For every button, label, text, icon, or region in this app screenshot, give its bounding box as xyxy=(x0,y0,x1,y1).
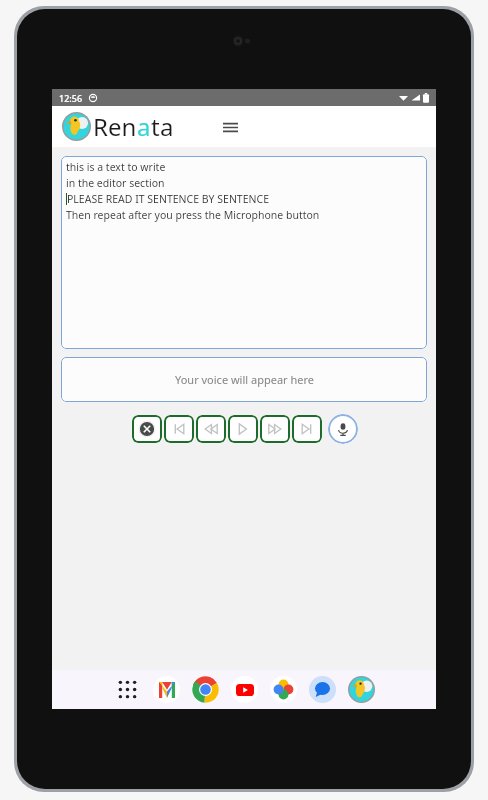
button[interactable]: Photos xyxy=(267,673,300,706)
button[interactable]: Rewind xyxy=(196,415,226,443)
button[interactable]: Voice output xyxy=(61,357,427,402)
staticText: Ren xyxy=(93,110,137,143)
button[interactable]: Text editor xyxy=(61,156,427,349)
button[interactable]: Previous sentence xyxy=(164,415,194,443)
staticText: this is a text to write xyxy=(66,160,166,174)
button[interactable]: Next sentence xyxy=(292,415,322,443)
staticText: PLEASE READ IT SENTENCE BY SENTENCE xyxy=(67,192,269,206)
button[interactable]: Play xyxy=(228,415,258,443)
staticText: t xyxy=(151,110,160,143)
staticText: a xyxy=(137,110,151,143)
staticText: 12:56 xyxy=(59,92,83,104)
button[interactable]: Fast forward xyxy=(260,415,290,443)
button[interactable]: Renata home xyxy=(60,108,176,145)
button[interactable]: Microphone xyxy=(328,414,358,444)
staticText: in the editor section xyxy=(66,176,165,190)
staticText: a xyxy=(160,110,174,143)
staticText: Then repeat after you press the Micropho… xyxy=(66,208,320,222)
button[interactable]: Gmail xyxy=(150,673,183,706)
button[interactable]: Stop xyxy=(132,415,162,443)
button[interactable]: Renata xyxy=(345,673,378,706)
button[interactable]: Messages xyxy=(306,673,339,706)
button[interactable]: All apps xyxy=(111,673,144,706)
button[interactable]: YouTube xyxy=(228,673,261,706)
button[interactable]: Chrome xyxy=(189,673,222,706)
staticText: Your voice will appear here xyxy=(175,372,314,387)
button[interactable]: Menu xyxy=(214,111,246,143)
